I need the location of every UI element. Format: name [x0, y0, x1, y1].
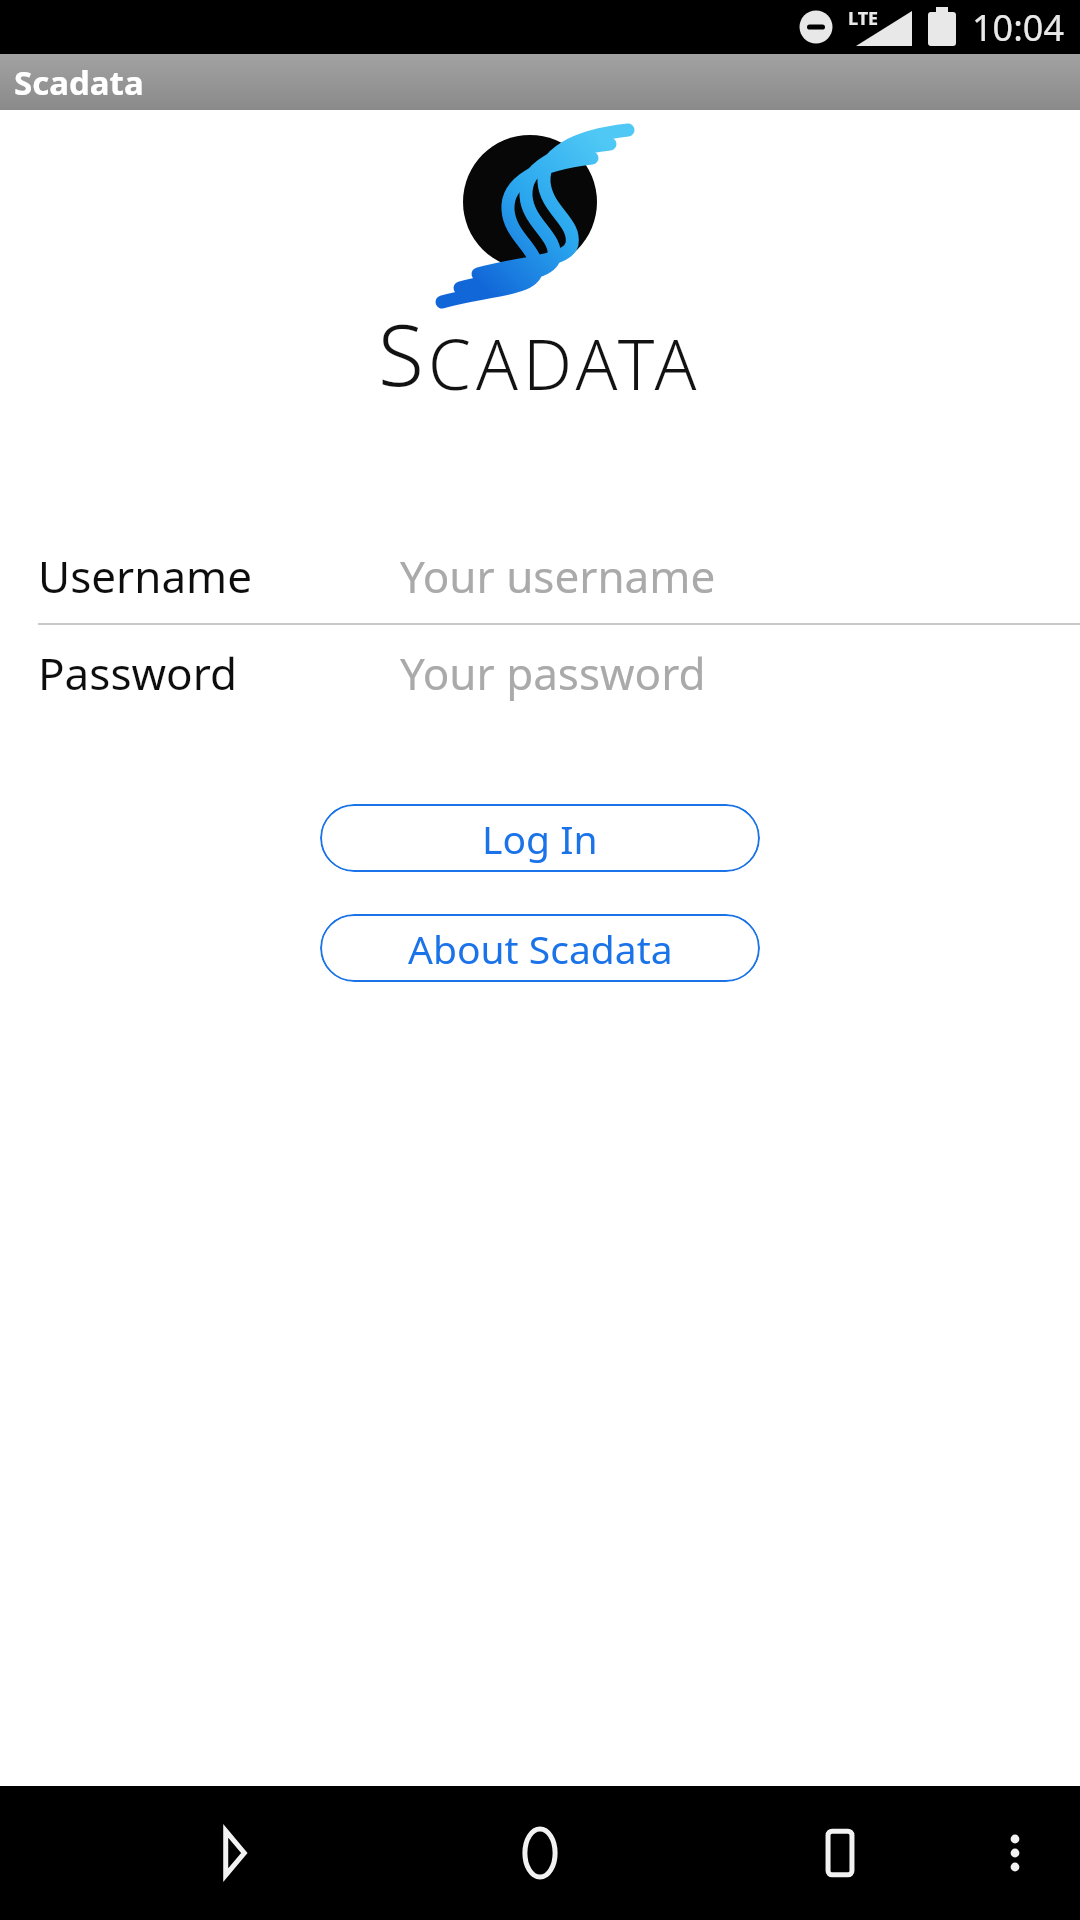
- staticText: 10:04: [972, 3, 1065, 52]
- button[interactable]: Recent apps: [780, 1793, 900, 1913]
- button[interactable]: Username: [0, 528, 1080, 625]
- staticText: Your password: [400, 643, 706, 703]
- staticText: Username: [38, 546, 253, 606]
- staticText: Your username: [400, 546, 716, 606]
- staticText: S: [378, 296, 428, 410]
- staticText: LTE: [848, 6, 879, 31]
- staticText: Log In: [482, 812, 598, 865]
- staticText: CADATA: [428, 316, 702, 410]
- staticText: Scadata: [14, 60, 144, 105]
- button[interactable]: Log In: [320, 804, 760, 872]
- button[interactable]: Back: [175, 1793, 295, 1913]
- button[interactable]: Password: [0, 625, 1080, 720]
- staticText: Password: [38, 643, 238, 703]
- button[interactable]: More options: [960, 1798, 1070, 1908]
- button[interactable]: About Scadata: [320, 914, 760, 982]
- staticText: About Scadata: [408, 922, 673, 975]
- button[interactable]: Home: [480, 1793, 600, 1913]
